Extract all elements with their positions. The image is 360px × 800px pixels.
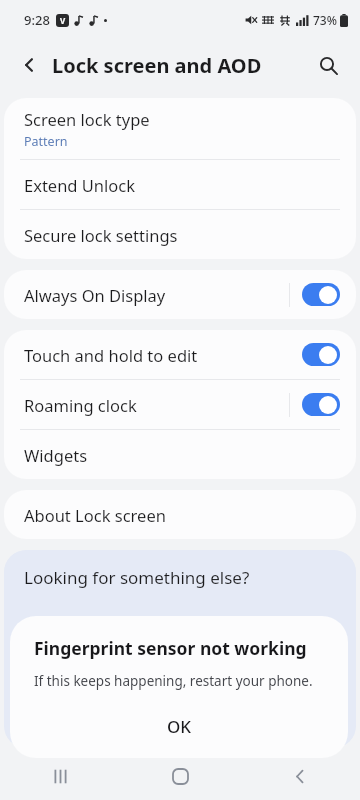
button[interactable]: Touch and hold to edit: [4, 330, 356, 379]
staticText: 73%: [313, 12, 337, 28]
button[interactable]: Recents: [32, 752, 88, 800]
button[interactable]: Back: [272, 752, 328, 800]
staticText: Lock screen and AOD: [52, 52, 262, 79]
staticText: OK: [167, 715, 192, 738]
staticText: 9:28: [24, 11, 50, 29]
button[interactable]: Toggle on: [302, 343, 340, 366]
button[interactable]: Widgets: [4, 430, 356, 479]
button[interactable]: Extend Unlock: [4, 160, 356, 209]
staticText: Looking for something else?: [24, 566, 250, 589]
staticText: If this keeps happening, restart your ph…: [34, 672, 313, 690]
button[interactable]: Screen lock type: [4, 98, 356, 159]
button[interactable]: Always On Display: [4, 270, 356, 319]
button[interactable]: Home: [152, 752, 208, 800]
button[interactable]: Roaming clock: [4, 380, 356, 429]
button[interactable]: OK: [10, 706, 348, 746]
staticText: V: [60, 15, 66, 26]
staticText: Fingerprint sensor not working: [34, 636, 307, 660]
staticText: Always On Display: [24, 284, 166, 306]
staticText: Extend Unlock: [24, 174, 136, 196]
button[interactable]: About Lock screen: [4, 490, 356, 539]
button[interactable]: Toggle on: [302, 393, 340, 416]
staticText: Pattern: [24, 133, 68, 150]
staticText: Secure lock settings: [24, 224, 178, 246]
staticText: Touch and hold to edit: [24, 344, 198, 366]
button[interactable]: Toggle on: [302, 283, 340, 306]
button[interactable]: Back: [12, 47, 48, 83]
staticText: About Lock screen: [24, 504, 166, 526]
staticText: Widgets: [24, 444, 88, 466]
button[interactable]: Search: [310, 47, 346, 83]
staticText: Roaming clock: [24, 394, 137, 416]
staticText: Screen lock type: [24, 108, 150, 130]
button[interactable]: Secure lock settings: [4, 210, 356, 259]
